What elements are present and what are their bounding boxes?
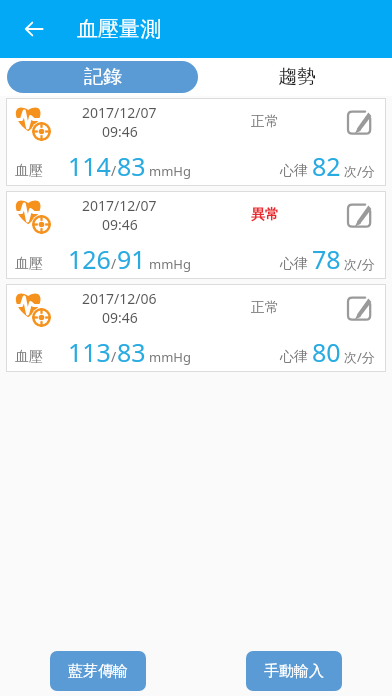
staticText: 83 <box>117 149 146 183</box>
staticText: 心律 <box>280 255 308 273</box>
staticText: 趨勢 <box>278 65 316 89</box>
button[interactable]: Edit <box>342 290 378 326</box>
staticText: 正常 <box>251 299 279 317</box>
staticText: 血壓 <box>15 348 43 366</box>
staticText: 82 <box>312 149 341 183</box>
staticText: 09:46 <box>102 215 138 234</box>
staticText: 113 <box>68 335 111 369</box>
staticText: 藍芽傳輸 <box>68 662 128 681</box>
staticText: mmHg <box>149 348 191 366</box>
staticText: mmHg <box>149 162 191 180</box>
staticText: 心律 <box>280 162 308 180</box>
staticText: 80 <box>312 335 341 369</box>
staticText: 78 <box>312 242 341 276</box>
staticText: 血壓 <box>15 162 43 180</box>
staticText: 126 <box>68 242 111 276</box>
staticText: 83 <box>117 335 146 369</box>
staticText: / <box>111 161 117 180</box>
staticText: 血壓量測 <box>77 16 161 42</box>
staticText: / <box>111 254 117 273</box>
button[interactable]: Back <box>12 7 56 51</box>
button[interactable]: 藍芽傳輸 <box>50 651 146 691</box>
staticText: 114 <box>68 149 111 183</box>
button[interactable]: 2017/12/07 <box>6 191 386 279</box>
button[interactable]: 2017/12/06 <box>6 284 386 372</box>
staticText: 記錄 <box>84 65 122 89</box>
button[interactable]: Edit <box>342 104 378 140</box>
staticText: 91 <box>117 242 146 276</box>
staticText: 異常 <box>251 206 279 224</box>
staticText: mmHg <box>149 255 191 273</box>
staticText: 09:46 <box>102 122 138 141</box>
button[interactable]: 手動輸入 <box>246 651 342 691</box>
staticText: 2017/12/07 <box>82 103 157 122</box>
staticText: / <box>111 347 117 366</box>
staticText: 血壓 <box>15 255 43 273</box>
staticText: 手動輸入 <box>264 662 324 681</box>
staticText: 2017/12/07 <box>82 196 157 215</box>
staticText: 心律 <box>280 348 308 366</box>
staticText: 次/分 <box>344 348 375 366</box>
staticText: 次/分 <box>344 162 375 180</box>
button[interactable]: Edit <box>342 197 378 233</box>
staticText: 2017/12/06 <box>82 289 157 308</box>
staticText: 正常 <box>251 113 279 131</box>
button[interactable]: 2017/12/07 <box>6 98 386 186</box>
staticText: 次/分 <box>344 255 375 273</box>
button[interactable]: 趨勢 <box>201 61 392 93</box>
staticText: 09:46 <box>102 308 138 327</box>
button[interactable]: 記錄 <box>7 61 198 93</box>
